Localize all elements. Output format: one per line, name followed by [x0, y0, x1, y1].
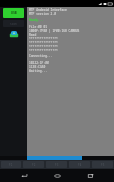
staticText: scan	[10, 22, 17, 26]
staticText: F4	[78, 163, 82, 167]
staticText: ****************	[29, 49, 58, 53]
button[interactable]: scan	[3, 20, 24, 27]
staticText: ****************	[29, 37, 58, 41]
staticText: MTP version 2.0	[29, 12, 57, 16]
staticText: USB	[11, 11, 17, 15]
staticText: File:00 01	[29, 25, 48, 29]
staticText: F2	[32, 163, 36, 167]
button[interactable]: USB	[3, 8, 24, 18]
staticText: Read	[29, 33, 37, 37]
staticText: 1000F:7FB0 | 1F00:168 CAMBUS	[29, 29, 80, 33]
staticText: 10222:1F:00	[29, 61, 49, 65]
staticText: ****************	[29, 45, 58, 49]
button[interactable]: Back	[15, 169, 33, 182]
staticText: F1	[9, 163, 13, 167]
staticText: Connecting...	[29, 54, 53, 58]
staticText: Waiting...	[29, 69, 48, 73]
button[interactable]: Home	[48, 169, 66, 182]
button[interactable]: Device	[9, 30, 19, 38]
staticText: F5	[101, 163, 105, 167]
button[interactable]: Recent apps	[81, 169, 99, 182]
staticText: F3	[55, 163, 59, 167]
staticText: MTP Android Interface	[29, 8, 67, 12]
staticText: 113B:C3A0	[29, 65, 46, 69]
staticText: Ready...	[29, 18, 44, 22]
staticText: ****************	[29, 41, 58, 45]
